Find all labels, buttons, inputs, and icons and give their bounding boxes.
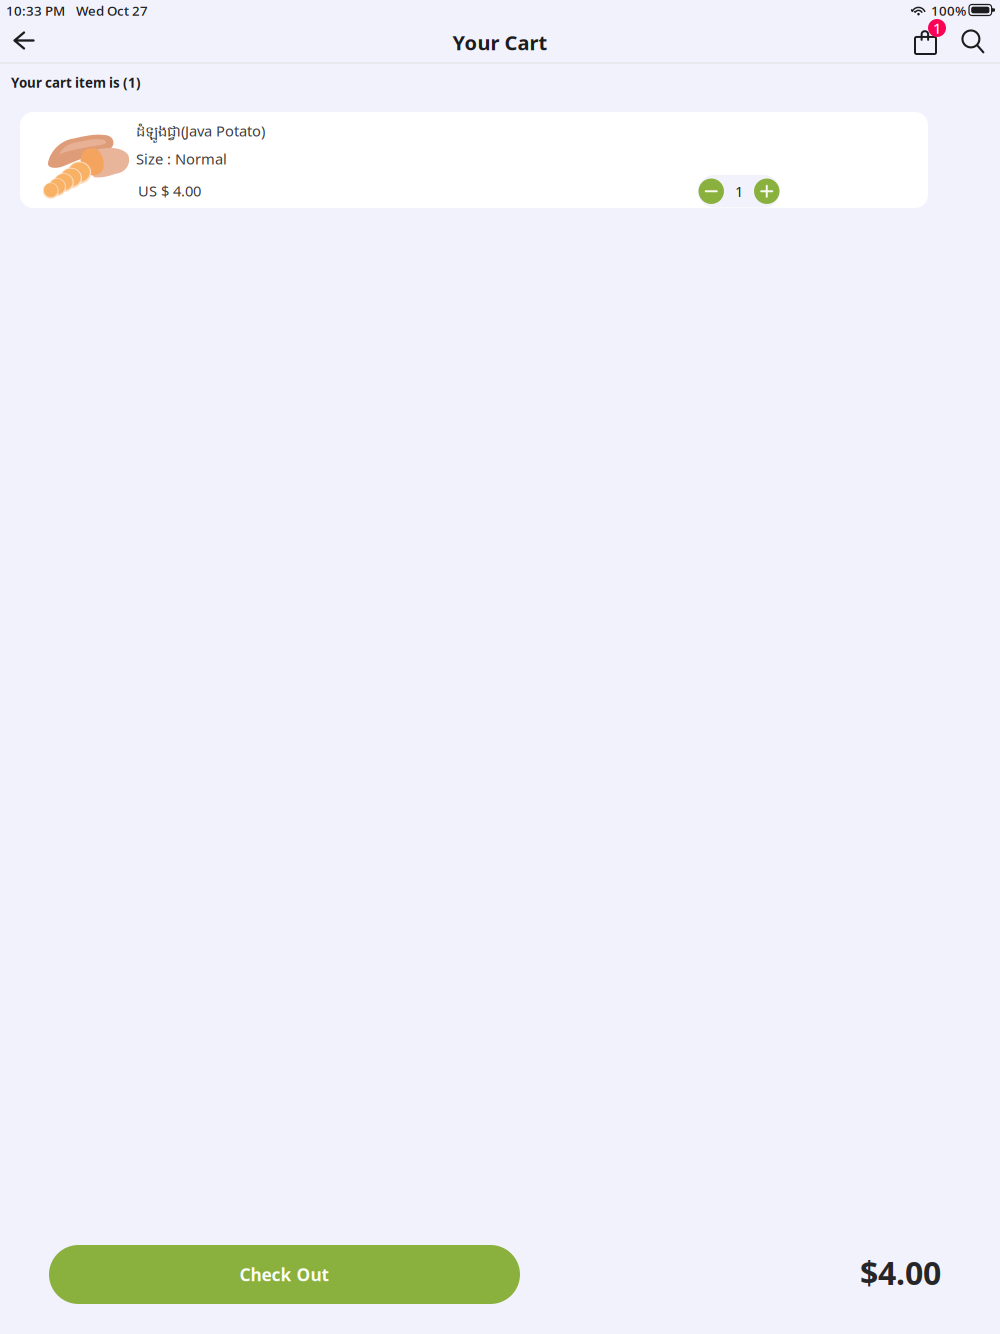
button[interactable]: Your cart item is (1) bbox=[0, 70, 152, 95]
button[interactable]: Search bbox=[951, 21, 991, 64]
staticText: Check Out bbox=[239, 1263, 329, 1286]
staticText: Your cart item is (1) bbox=[11, 74, 141, 91]
button[interactable]: Decrease quantity bbox=[698, 178, 724, 204]
staticText: 10:33 PM bbox=[6, 2, 65, 19]
button[interactable]: ដំឡូងជ្វា (Java Potato), Size : Normal, … bbox=[20, 112, 928, 208]
staticText: 1 bbox=[735, 181, 743, 201]
staticText: Wed Oct 27 bbox=[76, 2, 148, 19]
button[interactable]: Cart bbox=[913, 21, 957, 64]
staticText: ដំឡូងជ្វា(Java Potato) bbox=[136, 121, 265, 143]
staticText: $4.00 bbox=[860, 1251, 941, 1294]
button[interactable]: Increase quantity bbox=[754, 178, 779, 204]
staticText: Size : Normal bbox=[136, 149, 227, 168]
button[interactable]: Back bbox=[2, 21, 46, 64]
staticText: US $ 4.00 bbox=[138, 181, 201, 200]
staticText: 1 bbox=[933, 18, 941, 38]
staticText: 100% bbox=[931, 2, 966, 19]
button[interactable]: Check Out bbox=[49, 1245, 520, 1304]
staticText: Your Cart bbox=[452, 29, 547, 56]
